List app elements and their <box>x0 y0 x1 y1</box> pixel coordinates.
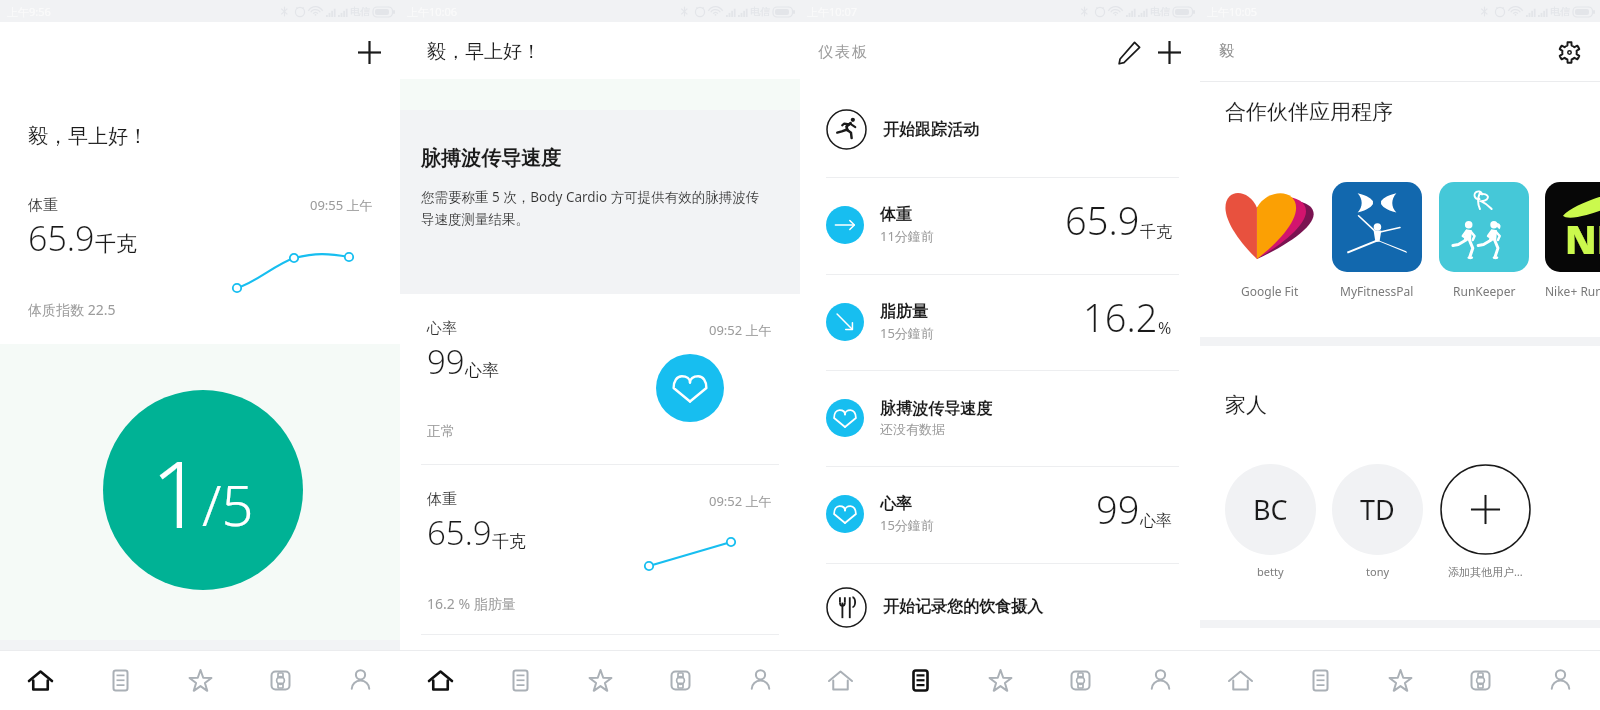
staticText: 脂肪量 <box>880 302 928 322</box>
staticText: 正常 <box>427 423 455 441</box>
button[interactable]: 体重 <box>400 465 800 634</box>
staticText: 心率 <box>427 319 457 338</box>
staticText: 11分鐘前 <box>880 227 934 245</box>
button[interactable]: Add <box>1149 32 1189 72</box>
staticText: TD <box>1360 491 1395 528</box>
button[interactable]: Devices <box>640 651 720 710</box>
button[interactable]: Devices <box>1040 651 1120 710</box>
staticText: 15分鐘前 <box>880 324 934 342</box>
button[interactable]: 1 <box>103 390 303 590</box>
staticText: 65.9 <box>1065 194 1140 246</box>
staticText: 家人 <box>1225 392 1267 418</box>
staticText: 仪表板 <box>817 43 868 62</box>
staticText: NR <box>1565 213 1600 265</box>
staticText: MyFitnessPal <box>1340 283 1414 299</box>
button[interactable]: RunKeeper <box>1439 182 1529 299</box>
button[interactable]: Edit <box>1109 32 1149 72</box>
staticText: Google Fit <box>1241 283 1299 299</box>
staticText: 09:55 上午 <box>310 196 373 214</box>
staticText: 09:52 上午 <box>709 492 772 510</box>
staticText: 心率 <box>465 360 499 381</box>
button[interactable]: Dashboard <box>80 651 160 710</box>
button[interactable]: Home <box>400 651 480 710</box>
button[interactable]: Favorites <box>960 651 1040 710</box>
button[interactable]: Profile <box>1120 651 1200 710</box>
staticText: 15分鐘前 <box>880 516 934 534</box>
button[interactable]: Profile <box>1520 651 1600 710</box>
button[interactable]: Favorites <box>160 651 240 710</box>
button[interactable]: MyFitnessPal <box>1332 182 1422 299</box>
staticText: BC <box>1253 491 1288 528</box>
staticText: 添加其他用户… <box>1448 564 1523 579</box>
button[interactable]: 体重 <box>800 177 1200 273</box>
staticText: 毅，早上好！ <box>28 124 148 149</box>
staticText: 体重 <box>427 490 457 509</box>
button[interactable]: Home <box>800 651 880 710</box>
button[interactable]: Dashboard <box>1280 651 1360 710</box>
button[interactable]: 开始记录您的饮食摄入 <box>800 564 1200 650</box>
staticText: 千克 <box>95 231 137 257</box>
staticText: 16.2 % 脂肪量 <box>427 594 516 613</box>
button[interactable]: 脉搏波传导速度 <box>800 370 1200 466</box>
staticText: 脉搏波传导速度 <box>880 399 992 419</box>
staticText: 16.2 <box>1083 291 1158 343</box>
staticText: 体重 <box>28 196 58 215</box>
button[interactable]: Devices <box>1440 651 1520 710</box>
button[interactable]: 脂肪量 <box>800 274 1200 370</box>
button[interactable]: Settings <box>1549 32 1589 72</box>
staticText: 千克 <box>1140 222 1172 242</box>
staticText: 您需要称重 5 次，Body Cardio 方可提供有效的脉搏波传导速度测量结果… <box>421 188 772 228</box>
staticText: /5 <box>202 466 254 542</box>
staticText: tony <box>1366 564 1390 579</box>
staticText: 心率 <box>1140 511 1172 531</box>
button[interactable]: Dashboard <box>480 651 560 710</box>
staticText: 99 <box>427 339 465 384</box>
staticText: Nike+ Run Club <box>1545 283 1600 299</box>
staticText: 65.9 <box>28 215 95 261</box>
staticText: % <box>1158 317 1172 339</box>
staticText: betty <box>1257 564 1284 579</box>
button[interactable]: Home <box>1200 651 1280 710</box>
button[interactable]: Profile <box>320 651 400 710</box>
button[interactable]: Favorites <box>560 651 640 710</box>
button[interactable]: 心率 <box>800 466 1200 562</box>
button[interactable]: TD <box>1332 464 1423 579</box>
button[interactable]: Favorites <box>1360 651 1440 710</box>
staticText: 千克 <box>492 531 526 552</box>
staticText: 体重 <box>880 205 912 225</box>
staticText: 09:52 上午 <box>709 321 772 339</box>
staticText: 还没有数据 <box>880 421 945 437</box>
button[interactable]: 开始跟踪活动 <box>800 82 1200 177</box>
button[interactable]: Dashboard <box>880 651 960 710</box>
button[interactable]: 心率 <box>400 294 800 464</box>
staticText: 99 <box>1096 483 1140 535</box>
staticText: 毅，早上好！ <box>427 40 541 64</box>
button[interactable]: BC <box>1225 464 1316 579</box>
staticText: 心率 <box>880 494 912 514</box>
staticText: 体质指数 22.5 <box>28 300 116 319</box>
staticText: 脉搏波传导速度 <box>421 146 561 171</box>
button[interactable]: Devices <box>240 651 320 710</box>
button[interactable]: Profile <box>720 651 800 710</box>
staticText: 电信 <box>750 5 770 18</box>
button[interactable]: NR <box>1545 182 1600 299</box>
staticText: 电信 <box>1150 5 1170 18</box>
staticText: 65.9 <box>427 510 492 555</box>
staticText: 合作伙伴应用程序 <box>1225 99 1393 125</box>
staticText: 毅 <box>1219 42 1234 61</box>
button[interactable]: Home <box>0 651 80 710</box>
staticText: 开始记录您的饮食摄入 <box>883 597 1043 617</box>
button[interactable]: Add user <box>1440 464 1531 579</box>
staticText: 电信 <box>350 5 370 18</box>
staticText: RunKeeper <box>1453 283 1516 299</box>
staticText: 1 <box>151 430 204 555</box>
button[interactable]: Add <box>349 32 389 72</box>
button[interactable]: Google Fit <box>1225 182 1315 299</box>
staticText: 开始跟踪活动 <box>883 120 979 140</box>
staticText: 电信 <box>1550 5 1570 18</box>
